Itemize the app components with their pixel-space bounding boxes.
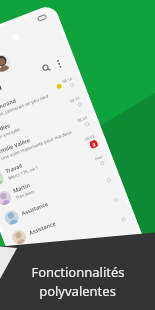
button[interactable]: Assistance xyxy=(3,186,128,251)
staticText: 08:14 xyxy=(61,76,73,84)
button[interactable]: Support xyxy=(11,206,136,271)
staticText: Une suite importante pour ma deux xyxy=(0,128,73,161)
button[interactable]: More options xyxy=(51,56,66,71)
button[interactable]: Émilie Valère xyxy=(0,108,98,173)
staticText: 2 xyxy=(92,142,97,147)
button[interactable]: Search xyxy=(37,59,55,77)
staticText: Émilie Valère xyxy=(0,136,31,155)
button[interactable]: Travail xyxy=(0,128,106,192)
staticText: Très bien xyxy=(15,188,35,200)
button[interactable]: Foodies xyxy=(0,88,91,153)
staticText: 08:03 xyxy=(84,133,96,142)
staticText: Bien envoyée xyxy=(0,126,21,142)
staticText: 08:03 xyxy=(76,115,89,123)
staticText: Merci 17h, ok ? xyxy=(7,164,39,181)
button[interactable]: 08:15 xyxy=(0,7,146,297)
staticText: Threema xyxy=(0,79,4,107)
button[interactable]: Anne Durand xyxy=(0,69,83,133)
button[interactable]: Assistance xyxy=(0,167,121,232)
button[interactable]: Contact avatar xyxy=(0,52,13,74)
staticText: Travail xyxy=(4,161,24,174)
button[interactable]: Martin xyxy=(0,147,113,212)
staticText: Quoique, j'aimerais un peu tard xyxy=(0,92,49,122)
staticText: Assistance xyxy=(20,200,49,216)
staticText: Martin xyxy=(12,181,31,194)
staticText: 08:14 xyxy=(69,95,81,104)
staticText: Hier xyxy=(94,154,104,161)
staticText: polyvalentes xyxy=(39,282,116,300)
staticText: Assistance xyxy=(28,219,57,236)
staticText: Fonctionnalités xyxy=(31,263,125,281)
staticText: Anne Durand xyxy=(0,96,17,116)
staticText: Support xyxy=(35,241,58,256)
staticText: Foodies xyxy=(0,121,11,135)
